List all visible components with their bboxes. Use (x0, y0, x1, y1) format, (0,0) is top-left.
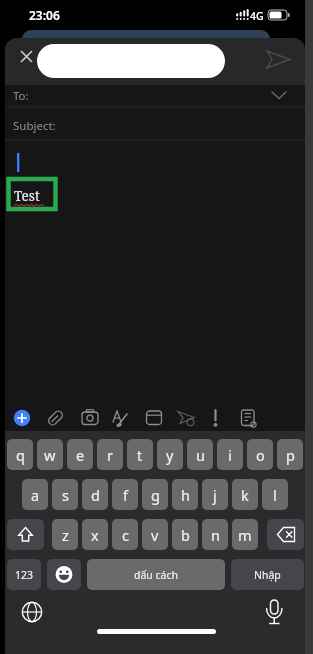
staticText: m (238, 525, 252, 545)
staticText: u (196, 445, 205, 465)
button[interactable] (173, 404, 199, 432)
button[interactable]: i (217, 439, 243, 470)
button[interactable]: q (7, 439, 33, 470)
staticText: i (228, 445, 232, 465)
button[interactable]: w (37, 439, 63, 470)
button[interactable]: z (52, 519, 78, 550)
button[interactable]: d (82, 479, 108, 510)
staticText: r (107, 445, 113, 465)
button[interactable] (43, 404, 69, 432)
button[interactable]: h (172, 479, 198, 510)
button[interactable] (12, 44, 40, 70)
button[interactable]: x (82, 519, 108, 550)
button[interactable]: b (172, 519, 198, 550)
button[interactable]: 123 (7, 559, 41, 590)
button[interactable]: t (127, 439, 153, 470)
button[interactable] (5, 107, 305, 140)
button[interactable] (14, 596, 50, 628)
button[interactable]: m (232, 519, 258, 550)
staticText: h (181, 485, 190, 505)
button[interactable]: u (187, 439, 213, 470)
staticText: j (213, 485, 217, 505)
button[interactable]: y (157, 439, 183, 470)
staticText: z (62, 525, 69, 545)
staticText: dấu cách (134, 568, 179, 582)
staticText: t (137, 445, 143, 465)
button[interactable] (235, 404, 261, 432)
button[interactable]: f (112, 479, 138, 510)
staticText: d (91, 485, 100, 505)
button[interactable]: o (247, 439, 273, 470)
button[interactable] (141, 404, 167, 432)
button[interactable] (9, 404, 35, 432)
button[interactable] (258, 596, 290, 628)
staticText: c (122, 525, 129, 545)
staticText: e (76, 445, 85, 465)
staticText: v (151, 525, 159, 545)
button[interactable] (77, 404, 103, 432)
button[interactable]: k (232, 479, 258, 510)
button[interactable] (107, 404, 133, 432)
button[interactable]: a (22, 479, 48, 510)
button[interactable]: j (202, 479, 228, 510)
button[interactable] (7, 519, 44, 550)
staticText: x (91, 525, 99, 545)
button[interactable] (47, 559, 81, 590)
button[interactable] (258, 44, 298, 74)
staticText: a (31, 485, 40, 505)
button[interactable]: n (202, 519, 228, 550)
staticText: 23:06 (29, 7, 60, 23)
button[interactable]: e (67, 439, 93, 470)
button[interactable]: s (52, 479, 78, 510)
staticText: To: (13, 88, 29, 104)
button[interactable]: p (277, 439, 303, 470)
button[interactable]: g (142, 479, 168, 510)
button[interactable] (203, 404, 229, 432)
staticText: w (44, 445, 56, 465)
staticText: p (286, 445, 295, 465)
button[interactable]: dấu cách (87, 559, 225, 590)
staticText: n (211, 525, 220, 545)
button[interactable] (5, 85, 305, 107)
staticText: k (241, 485, 249, 505)
staticText: Nhập (254, 568, 281, 582)
staticText: Test (14, 187, 40, 205)
staticText: l (273, 485, 277, 505)
staticText: g (151, 485, 160, 505)
staticText: b (181, 525, 190, 545)
button[interactable]: l (262, 479, 288, 510)
staticText: Subject: (13, 118, 56, 134)
button[interactable] (267, 519, 304, 550)
staticText: y (166, 445, 174, 465)
button[interactable]: v (142, 519, 168, 550)
staticText: 123 (15, 568, 34, 582)
button[interactable]: c (112, 519, 138, 550)
staticText: f (123, 485, 128, 505)
staticText: o (256, 445, 265, 465)
button[interactable]: r (97, 439, 123, 470)
staticText: q (16, 445, 25, 465)
staticText: s (62, 485, 69, 505)
button[interactable]: Nhập (231, 559, 304, 590)
staticText: 4G (250, 9, 264, 23)
